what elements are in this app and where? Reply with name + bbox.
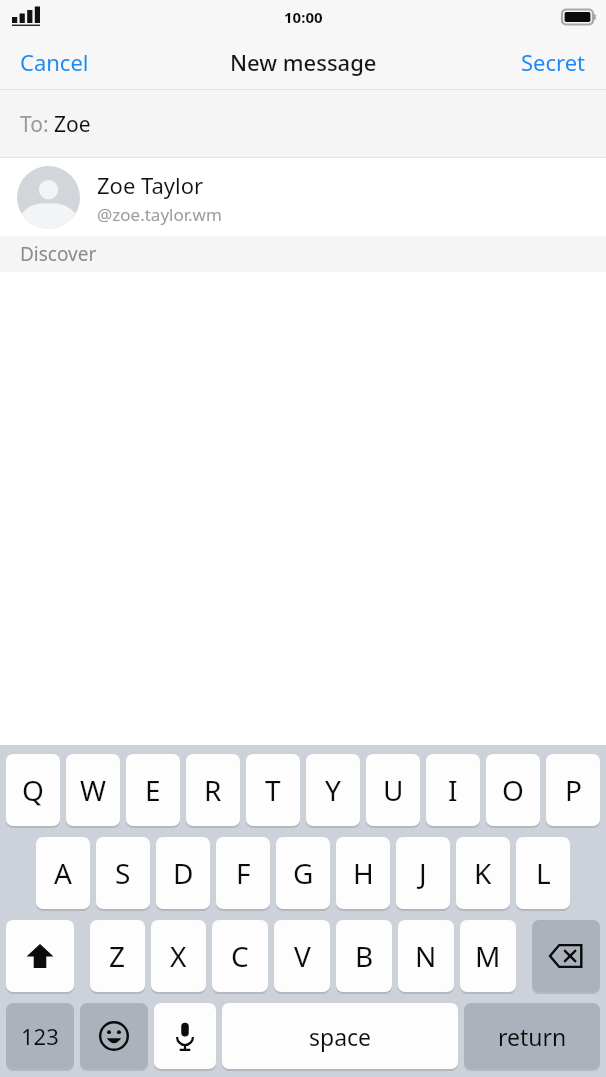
button[interactable]: I [426,754,480,826]
staticText: V [294,937,311,975]
button[interactable] [154,1003,216,1069]
staticText: New message [230,47,377,77]
button[interactable]: Q [6,754,60,826]
button[interactable]: M [460,920,516,992]
button[interactable] [80,1003,148,1069]
staticText: B [355,937,374,975]
button[interactable]: Cancel [0,39,109,85]
button[interactable]: W [66,754,120,826]
button[interactable]: F [216,837,270,909]
button[interactable]: J [396,837,450,909]
button[interactable]: X [151,920,206,992]
staticText: F [236,854,251,892]
staticText: O [502,771,524,809]
button[interactable]: G [276,837,330,909]
button[interactable]: D [156,837,210,909]
staticText: Z [109,937,126,975]
staticText: space [309,1021,372,1052]
other: Backspace [532,920,600,992]
staticText: X [170,937,187,975]
staticText: G [293,854,314,892]
staticText: P [565,771,582,809]
staticText: A [54,854,72,892]
button[interactable]: Y [306,754,360,826]
button[interactable]: V [274,920,330,992]
other: Shift [6,920,74,992]
button[interactable]: S [96,837,150,909]
staticText: Zoe [54,110,91,139]
button[interactable]: 123 [6,1003,74,1069]
button[interactable]: Zoe Taylor [0,158,606,236]
staticText: Q [22,771,44,809]
staticText: Secret [521,47,586,77]
staticText: Y [325,771,341,809]
staticText: U [383,771,404,809]
staticText: J [419,854,427,892]
other: Dictation [154,1003,216,1069]
button[interactable]: H [336,837,390,909]
staticText: L [536,854,551,892]
button[interactable]: B [336,920,392,992]
staticText: N [415,937,437,975]
staticText: S [115,854,131,892]
button[interactable] [6,920,74,992]
staticText: E [145,771,161,809]
staticText: K [474,854,492,892]
staticText: return [498,1021,567,1052]
button[interactable]: R [186,754,240,826]
staticText: I [448,771,458,809]
button[interactable]: Z [90,920,145,992]
button[interactable]: A [36,837,90,909]
button[interactable]: space [222,1003,458,1069]
button[interactable] [532,920,600,992]
button[interactable]: P [546,754,600,826]
staticText: C [231,937,249,975]
staticText: Cancel [20,47,89,77]
staticText: R [204,771,222,809]
button[interactable]: Secret [501,39,606,85]
button[interactable]: N [398,920,454,992]
staticText: T [265,771,281,809]
staticText: @zoe.taylor.wm [97,203,222,226]
button[interactable]: K [456,837,510,909]
staticText: 10:00 [284,7,323,27]
staticText: To: [20,110,54,139]
staticText: Zoe Taylor [97,170,204,200]
button[interactable]: T [246,754,300,826]
button[interactable]: To: [0,90,606,158]
button[interactable]: U [366,754,420,826]
staticText: D [173,854,194,892]
button[interactable]: E [126,754,180,826]
other: Emoji [80,1003,148,1069]
button[interactable]: L [516,837,570,909]
button[interactable]: O [486,754,540,826]
button[interactable]: return [464,1003,600,1069]
staticText: 123 [21,1021,59,1051]
staticText: M [475,937,501,975]
staticText: H [353,854,374,892]
staticText: W [80,771,107,809]
staticText: Discover [20,241,97,267]
button[interactable]: C [212,920,268,992]
